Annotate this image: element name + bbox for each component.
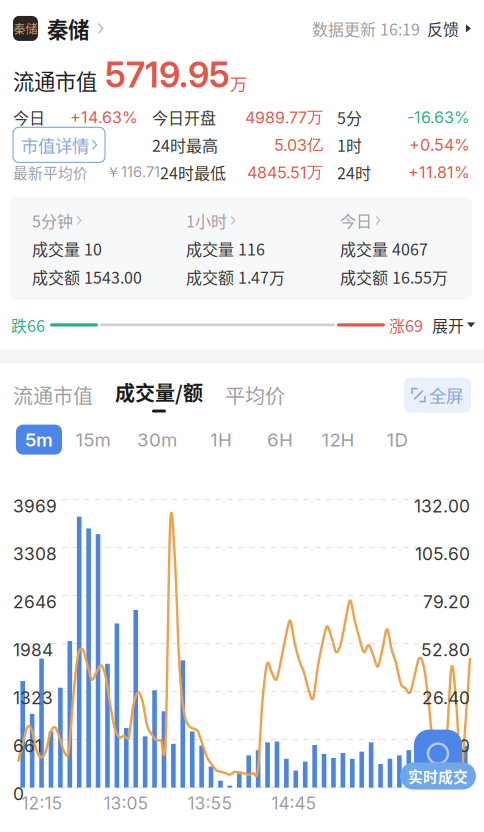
button[interactable]: 1H (190, 425, 252, 455)
staticText: 秦储 (47, 13, 89, 44)
button[interactable]: 1小时 (164, 209, 318, 288)
staticText: 26.40 (422, 687, 470, 708)
staticText: 132.00 (414, 496, 470, 517)
staticText: 2646 (13, 591, 57, 612)
staticText: 6H (267, 428, 293, 451)
staticText: 1时 (337, 133, 362, 156)
staticText: 13:55 (187, 793, 232, 814)
staticText: 5m (25, 428, 53, 451)
staticText: 3308 (13, 544, 57, 565)
staticText: 24时 (337, 161, 371, 184)
button[interactable]: 12H (308, 425, 368, 455)
staticText: 3969 (13, 496, 57, 517)
staticText: 成交额 1543.00 (32, 265, 142, 288)
button[interactable]: 6H (252, 425, 308, 455)
staticText: ￥116.71 (106, 163, 160, 182)
staticText: 12:15 (21, 793, 62, 814)
staticText: 反馈 (427, 17, 459, 40)
staticText: -16.63% (407, 108, 470, 127)
button[interactable]: 5分钟 (10, 209, 164, 288)
staticText: 今日 (340, 209, 372, 232)
staticText: 5分 (337, 106, 362, 129)
staticText: 涨69 (389, 313, 423, 336)
staticText: 24时最高 (152, 133, 218, 156)
staticText: 1984 (13, 639, 53, 660)
staticText: 实时成交 (408, 765, 468, 787)
button[interactable]: 30m (124, 425, 190, 455)
button[interactable]: 今日 (318, 209, 472, 288)
staticText: 105.60 (415, 544, 470, 565)
button[interactable]: 5m (16, 425, 62, 455)
button[interactable]: 秦储 (13, 13, 103, 44)
staticText: 成交额 16.55万 (340, 265, 448, 288)
button[interactable]: 实时成交 (400, 725, 476, 795)
staticText: 79.20 (423, 591, 470, 612)
staticText: 52.80 (421, 639, 470, 660)
staticText: 展开 (432, 313, 464, 336)
staticText: 13:05 (103, 793, 148, 814)
staticText: 5分钟 (32, 209, 73, 232)
staticText: 今日开盘 (152, 106, 216, 129)
staticText: 最新平均价 (13, 162, 88, 183)
button[interactable]: 流通市值 (13, 381, 93, 410)
staticText: 全屏 (429, 382, 463, 408)
button[interactable]: 1D (368, 425, 426, 455)
staticText: 4989.77万 (245, 107, 323, 127)
staticText: 4845.51万 (247, 162, 323, 182)
button[interactable]: 市值详情 (13, 127, 105, 162)
staticText: 平均价 (225, 381, 285, 410)
button[interactable]: 平均价 (203, 381, 285, 410)
button[interactable]: 展开 (423, 313, 475, 336)
staticText: 跌66 (11, 313, 45, 336)
staticText: 24时最低 (160, 161, 226, 184)
staticText: 0 (13, 783, 24, 804)
staticText: 30m (137, 428, 177, 451)
staticText: 今日 (13, 106, 45, 129)
staticText: 成交量 4067 (340, 237, 428, 260)
staticText: 秦储 (13, 20, 37, 37)
button[interactable]: 全屏 (404, 377, 471, 413)
staticText: +11.81% (408, 163, 470, 182)
staticText: 成交量/额 (115, 378, 203, 407)
staticText: 成交量 116 (186, 237, 265, 260)
staticText: 0.00 (433, 735, 470, 756)
staticText: 流通市值 (13, 65, 97, 96)
staticText: 成交量 10 (32, 237, 102, 260)
button[interactable]: 15m (62, 425, 124, 455)
staticText: 5.03亿 (274, 135, 323, 155)
staticText: 1323 (13, 687, 53, 708)
staticText: 流通市值 (13, 381, 93, 410)
staticText: 万 (230, 71, 247, 96)
staticText: +14.63% (70, 108, 138, 127)
staticText: 12H (321, 428, 354, 451)
staticText: 1D (386, 428, 407, 451)
button[interactable]: 数据更新 16:19 (312, 17, 471, 40)
staticText: 成交额 1.47万 (186, 265, 285, 288)
staticText: 数据更新 16:19 (312, 17, 420, 40)
staticText: 1H (210, 428, 232, 451)
staticText: 市值详情 (21, 132, 89, 157)
staticText: +0.54% (409, 135, 470, 155)
staticText: 1小时 (186, 209, 227, 232)
button[interactable]: 成交量/额 (93, 378, 203, 413)
staticText: 15m (75, 428, 110, 451)
staticText: 661 (13, 735, 42, 756)
staticText: 14:45 (271, 793, 316, 814)
staticText: 5719.95 (97, 54, 230, 96)
